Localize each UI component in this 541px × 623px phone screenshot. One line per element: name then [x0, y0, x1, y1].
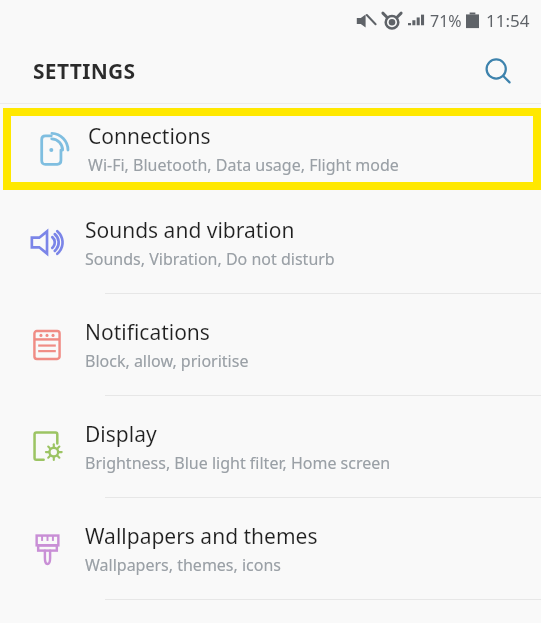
staticText: Wi-Fi, Bluetooth, Data usage, Flight mod…: [88, 154, 399, 176]
staticText: Sounds, Vibration, Do not disturb: [85, 248, 335, 270]
staticText: Sounds and vibration: [85, 216, 295, 245]
staticText: 11:54: [486, 9, 530, 32]
staticText: Block, allow, prioritise: [85, 350, 249, 372]
staticText: Wallpapers, themes, icons: [85, 554, 282, 576]
staticText: Display: [85, 420, 157, 449]
staticText: SETTINGS: [33, 57, 136, 86]
staticText: Connections: [88, 122, 211, 151]
button[interactable]: Wallpapers and themes: [0, 498, 541, 599]
button[interactable]: Display: [0, 396, 541, 497]
staticText: Notifications: [85, 318, 210, 347]
staticText: Wallpapers and themes: [85, 522, 318, 551]
staticText: Brightness, Blue light filter, Home scre…: [85, 452, 391, 474]
button[interactable]: Connections: [3, 108, 541, 190]
button[interactable]: Search: [475, 49, 521, 95]
button[interactable]: Sounds and vibration: [0, 192, 541, 293]
button[interactable]: Notifications: [0, 294, 541, 395]
staticText: 71%: [430, 10, 462, 32]
